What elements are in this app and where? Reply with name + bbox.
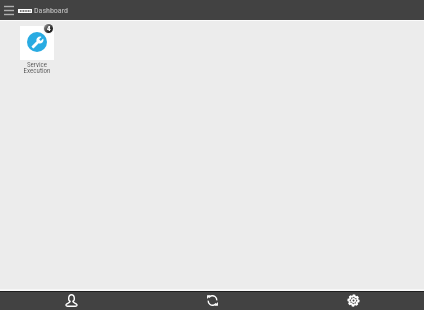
staticText: Execution <box>20 67 54 75</box>
button[interactable]: Account <box>0 292 142 310</box>
staticText: Dashboard <box>34 6 69 15</box>
staticText: Service <box>20 61 54 69</box>
button[interactable]: Open navigation menu <box>0 0 18 20</box>
button[interactable]: Settings <box>283 292 424 310</box>
staticText: 4 <box>47 25 51 33</box>
button[interactable]: 4 <box>13 26 61 76</box>
button[interactable]: Sync <box>142 292 283 310</box>
